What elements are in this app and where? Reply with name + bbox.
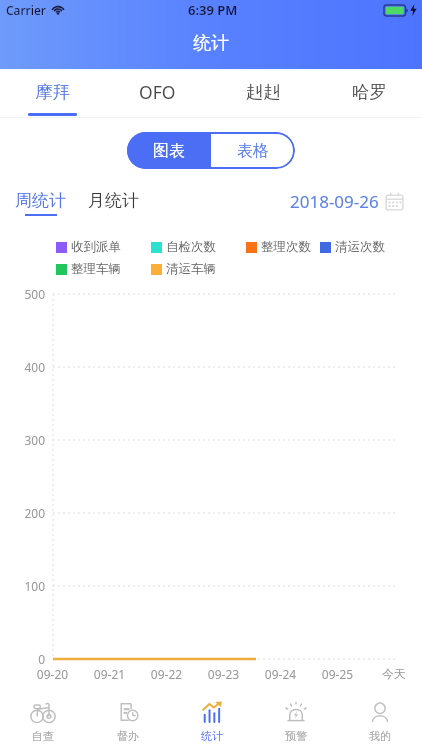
staticText: 清运次数 xyxy=(335,239,385,255)
staticText: 统计 xyxy=(201,729,223,743)
staticText: 周统计 xyxy=(15,190,66,211)
staticText: 表格 xyxy=(237,141,269,161)
staticText: 0 xyxy=(0,651,45,667)
staticText: 2018-09-26 xyxy=(290,190,379,213)
button[interactable]: 预警 xyxy=(254,694,338,750)
button[interactable]: 周统计 xyxy=(15,190,66,216)
button[interactable]: 我的 xyxy=(338,694,422,750)
staticText: 09-21 xyxy=(81,666,138,682)
staticText: 09-22 xyxy=(138,666,195,682)
button[interactable]: 统计 xyxy=(170,694,254,750)
staticText: 督办 xyxy=(117,729,139,743)
staticText: 清运车辆 xyxy=(166,261,216,277)
button[interactable]: 摩拜 xyxy=(0,69,105,115)
staticText: 收到派单 xyxy=(71,239,121,255)
staticText: OFO xyxy=(139,80,176,104)
button[interactable]: 督办 xyxy=(85,694,170,750)
staticText: 我的 xyxy=(369,729,391,743)
staticText: 200 xyxy=(0,505,45,521)
staticText: 09-24 xyxy=(252,666,309,682)
staticText: 09-25 xyxy=(309,666,366,682)
staticText: 6:39 PM xyxy=(188,1,238,19)
button[interactable]: 哈罗 xyxy=(316,69,422,115)
staticText: 09-23 xyxy=(195,666,252,682)
staticText: Carrier xyxy=(6,2,46,18)
staticText: 图表 xyxy=(153,141,185,161)
staticText: 100 xyxy=(0,578,45,594)
staticText: 400 xyxy=(0,359,45,375)
staticText: 摩拜 xyxy=(35,81,70,103)
button[interactable]: 月统计 xyxy=(88,190,139,211)
button[interactable]: 表格 xyxy=(211,132,295,169)
staticText: 预警 xyxy=(285,729,307,743)
staticText: 赳赳 xyxy=(246,81,281,103)
button[interactable]: 图表 xyxy=(127,132,211,169)
staticText: 统计 xyxy=(193,32,229,55)
staticText: 500 xyxy=(0,286,45,302)
button[interactable]: 赳赳 xyxy=(210,69,316,115)
staticText: 09-20 xyxy=(24,666,81,682)
button[interactable]: 自查 xyxy=(0,694,85,750)
staticText: 今天 xyxy=(366,666,422,681)
staticText: 300 xyxy=(0,432,45,448)
button[interactable]: OFO xyxy=(105,69,210,115)
staticText: 整理次数 xyxy=(261,239,311,255)
staticText: 自查 xyxy=(32,729,54,743)
staticText: 自检次数 xyxy=(166,239,216,255)
other: Pick date xyxy=(385,192,404,211)
staticText: 整理车辆 xyxy=(71,261,121,277)
button[interactable]: 2018-09-26 xyxy=(290,190,404,213)
staticText: 哈罗 xyxy=(352,81,387,103)
